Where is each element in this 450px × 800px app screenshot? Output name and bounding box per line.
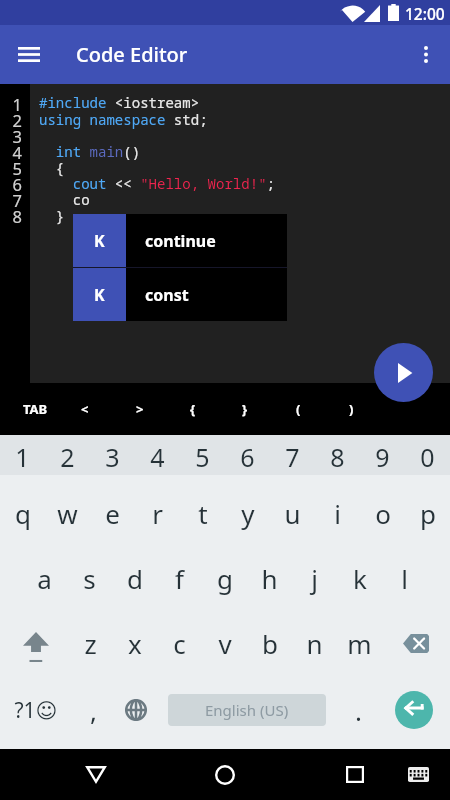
staticText: c [173,626,186,661]
button[interactable]: Backspace [382,610,450,676]
staticText: const [145,284,189,306]
button[interactable]: x [112,610,157,676]
staticText: 3 [105,440,120,474]
button[interactable]: K [73,214,287,267]
button[interactable]: English (US) [168,694,326,726]
staticText: 8 [330,440,345,474]
button[interactable]: 2 [45,435,90,479]
staticText: k [353,561,367,596]
button[interactable]: c [157,610,202,676]
staticText: ) [349,400,354,418]
button[interactable]: n [292,610,337,676]
button[interactable]: Language [116,676,156,744]
button[interactable]: . [336,676,380,744]
button[interactable]: > [114,383,166,435]
button[interactable]: Home [195,749,255,800]
button[interactable]: z [68,610,112,676]
button[interactable]: g [202,548,247,608]
staticText: i [334,496,341,531]
button[interactable]: w [45,479,90,548]
button[interactable]: q [0,479,45,548]
staticText: y [241,496,255,531]
button[interactable]: Shift [0,610,68,676]
staticText: , [90,693,97,728]
staticText: } [242,400,248,418]
button[interactable]: i [315,479,360,548]
button[interactable]: d [112,548,157,608]
staticText: s [83,561,96,596]
staticText: English (US) [205,700,289,720]
staticText: 2 [60,440,75,474]
button[interactable]: k [337,548,382,608]
staticText: t [198,496,208,531]
button[interactable]: More options [402,25,450,84]
staticText: o [375,496,391,531]
button[interactable]: Enter [395,691,433,729]
button[interactable]: Back [66,749,126,800]
staticText: b [262,626,278,661]
button[interactable]: , [70,676,116,744]
button[interactable]: t [180,479,225,548]
button[interactable]: 8 [315,435,360,479]
button[interactable]: < [59,383,111,435]
staticText: r [152,496,163,531]
button[interactable]: ( [272,383,324,435]
button[interactable]: 5 [180,435,225,479]
button[interactable]: r [135,479,180,548]
button[interactable]: f [157,548,202,608]
staticText: 6 [240,440,255,474]
staticText: K [94,284,105,306]
button[interactable]: 0 [405,435,450,479]
button[interactable]: 4 [135,435,180,479]
button[interactable]: 7 [270,435,315,479]
button[interactable]: s [67,548,112,608]
button[interactable]: j [292,548,337,608]
button[interactable]: m [337,610,382,676]
button[interactable]: u [270,479,315,548]
staticText: . [355,693,362,728]
button[interactable]: ?1☺ [3,676,69,744]
staticText: l [401,561,408,596]
button[interactable]: y [225,479,270,548]
button[interactable]: 3 [90,435,135,479]
staticText: ( [296,400,301,418]
staticText: #include <iostream> using namespace std;… [39,93,275,225]
staticText: 9 [375,440,390,474]
button[interactable]: 1 [0,435,45,479]
staticText: u [284,496,301,531]
staticText: 1 2 3 4 5 6 7 8 [0,93,22,228]
button[interactable]: b [247,610,292,676]
button[interactable]: v [202,610,247,676]
staticText: z [84,626,97,661]
staticText: e [105,496,120,531]
staticText: n [306,626,323,661]
staticText: q [15,496,31,531]
button[interactable]: Run [374,343,433,402]
staticText: p [420,496,436,531]
staticText: > [136,400,144,418]
button[interactable]: Menu [0,25,58,84]
button[interactable]: l [382,548,427,608]
button[interactable]: K [73,268,287,321]
staticText: a [37,561,52,596]
button[interactable]: e [90,479,135,548]
button[interactable]: o [360,479,405,548]
staticText: 4 [150,440,165,474]
button[interactable]: p [405,479,450,548]
button[interactable]: h [247,548,292,608]
staticText: { [190,400,196,418]
button[interactable]: } [219,383,271,435]
button[interactable]: Recents [325,749,385,800]
staticText: m [347,626,372,661]
button[interactable]: Switch keyboard [393,749,443,800]
staticText: Code Editor [76,41,188,68]
button[interactable]: 9 [360,435,405,479]
staticText: ?1☺ [14,696,58,725]
button[interactable]: 6 [225,435,270,479]
staticText: w [57,496,78,531]
button[interactable]: TAB [9,383,61,435]
staticText: < [81,400,89,418]
button[interactable]: a [22,548,67,608]
button[interactable]: { [167,383,219,435]
button[interactable]: ) [325,383,377,435]
